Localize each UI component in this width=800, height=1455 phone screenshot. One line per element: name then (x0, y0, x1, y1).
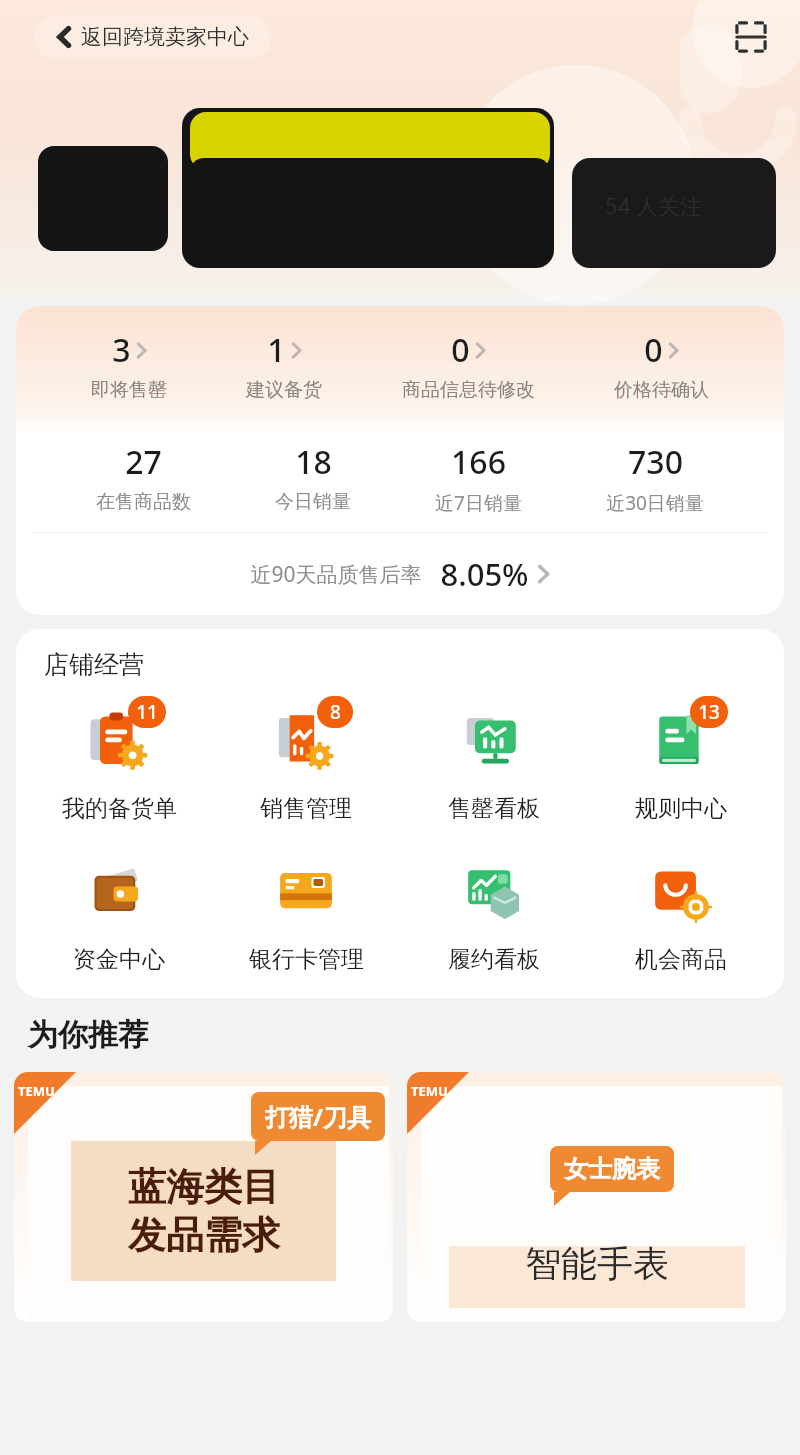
staticText: 11 (136, 699, 158, 725)
staticText: 资金中心 (73, 945, 165, 974)
staticText: 27 (125, 440, 162, 484)
staticText: 打猎/刀具 (265, 1100, 371, 1133)
staticText: 0 (644, 328, 663, 372)
button[interactable]: 13 (596, 698, 766, 823)
staticText: 0 (451, 328, 470, 372)
button[interactable]: 166 (431, 440, 526, 516)
staticText: 今日销量 (275, 490, 351, 514)
staticText: 商品信息待修改 (402, 378, 535, 402)
staticText: 730 (628, 440, 683, 484)
staticText: 销售管理 (260, 794, 352, 823)
staticText: 返回跨境卖家中心 (81, 24, 249, 50)
button[interactable]: 1 (242, 328, 326, 402)
staticText: 8.05% (440, 553, 529, 595)
button[interactable]: 27 (92, 440, 195, 514)
staticText: 我的备货单 (62, 794, 177, 823)
staticText: 女士腕表 (564, 1154, 660, 1184)
button[interactable]: 蓝海类目 (14, 1072, 393, 1322)
button[interactable]: Scan (728, 14, 774, 60)
staticText: 智能手表 (525, 1241, 669, 1286)
staticText: 价格待确认 (614, 378, 709, 402)
button[interactable]: 资金中心 (34, 849, 204, 974)
staticText: 即将售罄 (91, 378, 167, 402)
staticText: 履约看板 (448, 945, 540, 974)
staticText: 1 (267, 328, 286, 372)
staticText: 建议备货 (246, 378, 322, 402)
button[interactable]: 730 (602, 440, 708, 516)
button[interactable]: 3 (87, 328, 171, 402)
button[interactable]: 售罄看板 (409, 698, 579, 823)
staticText: 166 (451, 440, 506, 484)
staticText: 蓝海类目 (128, 1163, 280, 1211)
staticText: 发品需求 (128, 1211, 280, 1259)
staticText: 8 (330, 699, 341, 725)
staticText: 近7日销量 (435, 490, 522, 516)
staticText: 为你推荐 (28, 1016, 148, 1054)
button[interactable]: 8 (221, 698, 391, 823)
staticText: 近30日销量 (606, 490, 704, 516)
button[interactable]: 11 (34, 698, 204, 823)
staticText: 规则中心 (635, 794, 727, 823)
button[interactable]: 0 (610, 328, 713, 402)
staticText: 3 (112, 328, 131, 372)
staticText: 13 (698, 699, 720, 725)
staticText: 售罄看板 (448, 794, 540, 823)
staticText: 机会商品 (635, 945, 727, 974)
staticText: 银行卡管理 (249, 945, 364, 974)
staticText: TEMU (411, 1082, 448, 1100)
button[interactable]: 机会商品 (596, 849, 766, 974)
button[interactable]: 近90天品质售后率 (16, 533, 784, 615)
button[interactable]: 履约看板 (409, 849, 579, 974)
button[interactable]: 18 (271, 440, 355, 514)
staticText: 在售商品数 (96, 490, 191, 514)
button[interactable]: 女士腕表 (407, 1072, 786, 1322)
button[interactable]: 0 (398, 328, 539, 402)
staticText: 近90天品质售后率 (250, 560, 422, 589)
staticText: 店铺经营 (44, 649, 144, 680)
staticText: 18 (295, 440, 332, 484)
button[interactable]: 返回跨境卖家中心 (34, 15, 271, 59)
staticText: 54 人关注 (605, 190, 702, 220)
button[interactable]: 银行卡管理 (221, 849, 391, 974)
staticText: TEMU (18, 1082, 55, 1100)
